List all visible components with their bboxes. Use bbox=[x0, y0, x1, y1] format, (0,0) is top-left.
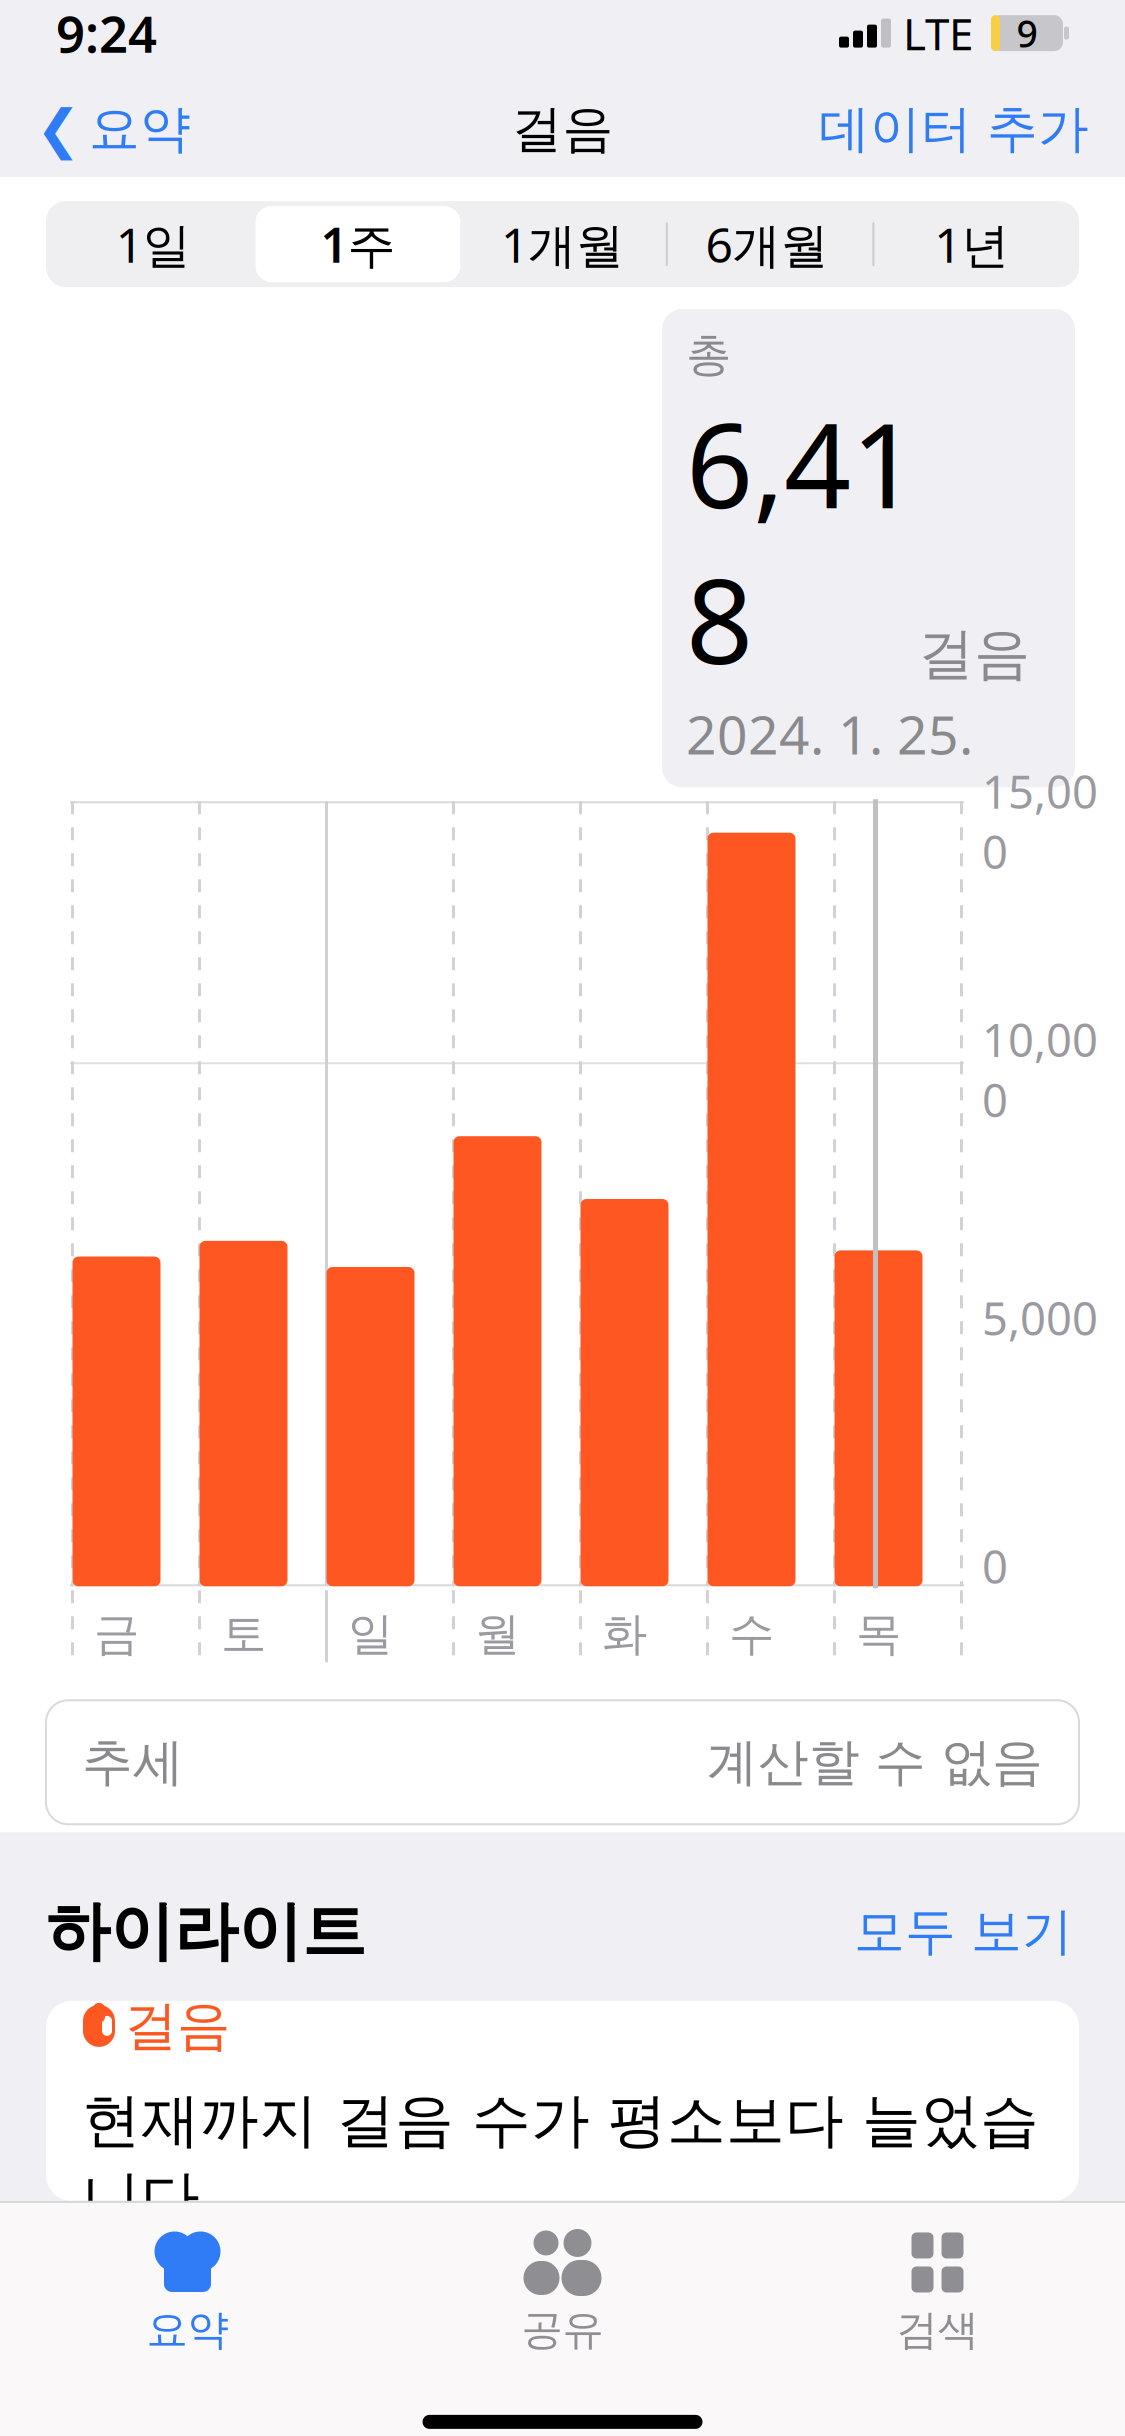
staticText: 검색 bbox=[896, 2304, 978, 2355]
staticText: 걸음 bbox=[918, 620, 1030, 688]
button[interactable]: 1주 bbox=[256, 206, 460, 282]
staticText: 0 bbox=[982, 1536, 1008, 1596]
button[interactable]: 1일 bbox=[51, 206, 256, 282]
staticText: 10,000 bbox=[982, 1009, 1098, 1130]
staticText: 요약 bbox=[146, 2304, 228, 2355]
staticText: 5,000 bbox=[982, 1288, 1098, 1348]
staticText: 목 bbox=[856, 1606, 901, 1662]
staticText: 6,418 bbox=[686, 385, 918, 696]
staticText: 공유 bbox=[521, 2304, 603, 2355]
button[interactable]: 추세 bbox=[46, 1700, 1079, 1824]
staticText: 계산할 수 없음 bbox=[707, 1731, 1043, 1793]
button[interactable]: 검색 bbox=[750, 2210, 1125, 2355]
staticText: 요약 bbox=[89, 98, 191, 160]
staticText: 월 bbox=[475, 1606, 520, 1662]
staticText: 1일 bbox=[116, 212, 191, 276]
button[interactable]: 공유 bbox=[375, 2210, 750, 2355]
staticText: 2024. 1. 25. bbox=[686, 698, 973, 769]
button[interactable]: 6개월 bbox=[665, 206, 869, 282]
staticText: 현재까지 걸음 수가 평소보다 늘었습니다. bbox=[82, 2085, 1039, 2235]
staticText: 1년 bbox=[934, 212, 1009, 276]
staticText: 일 bbox=[348, 1606, 393, 1662]
staticText: 토 bbox=[221, 1606, 266, 1662]
staticText: 모두 보기 bbox=[854, 1900, 1073, 1963]
staticText: 9 bbox=[1016, 8, 1037, 58]
staticText: 1주 bbox=[320, 212, 395, 276]
button[interactable]: 1개월 bbox=[460, 206, 665, 282]
button[interactable]: ❮ bbox=[30, 88, 197, 170]
staticText: 데이터 추가 bbox=[819, 98, 1089, 160]
staticText: 하이라이트 bbox=[46, 1892, 366, 1971]
staticText: 15,000 bbox=[982, 761, 1098, 881]
staticText: 추세 bbox=[82, 1731, 184, 1793]
button[interactable]: 데이터 추가 bbox=[813, 88, 1095, 170]
staticText: 걸음 bbox=[511, 98, 613, 160]
staticText: 걸음 bbox=[124, 1993, 230, 2059]
button[interactable]: 모두 보기 bbox=[848, 1892, 1079, 1971]
staticText: 총 bbox=[686, 327, 731, 383]
staticText: 금 bbox=[94, 1606, 139, 1662]
staticText: 9:24 bbox=[56, 0, 157, 67]
staticText: ❮ bbox=[36, 99, 81, 159]
button[interactable]: 1년 bbox=[869, 206, 1074, 282]
button[interactable]: 요약 bbox=[0, 2210, 375, 2355]
staticText: 6개월 bbox=[706, 212, 829, 276]
staticText: 화 bbox=[602, 1606, 647, 1662]
button[interactable]: 걸음 bbox=[46, 2001, 1079, 2201]
staticText: LTE bbox=[903, 4, 973, 62]
staticText: 수 bbox=[729, 1606, 774, 1662]
staticText: 1개월 bbox=[501, 212, 624, 276]
